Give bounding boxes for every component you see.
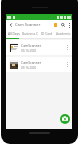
button[interactable]: CamScanner bbox=[6, 40, 72, 55]
button[interactable]: Academic bbox=[55, 30, 72, 38]
button[interactable]: All Docs bbox=[6, 30, 22, 38]
button[interactable]: Premium bbox=[51, 20, 59, 30]
button[interactable]: Scan with camera bbox=[60, 114, 70, 124]
staticText: All Docs bbox=[8, 32, 20, 36]
button[interactable]: More options bbox=[66, 20, 72, 30]
button[interactable]: ID Card bbox=[38, 30, 55, 38]
staticText: Business Card bbox=[22, 32, 38, 36]
staticText: ID Card bbox=[41, 32, 53, 36]
staticText: Academic bbox=[56, 32, 71, 36]
button[interactable]: Search bbox=[59, 20, 66, 30]
button[interactable]: Back bbox=[6, 20, 15, 30]
button[interactable]: CamScanner bbox=[6, 57, 72, 72]
staticText: CamScanner bbox=[21, 60, 42, 65]
staticText: 09-16-2020 bbox=[21, 49, 37, 53]
button[interactable]: Document options bbox=[64, 57, 71, 72]
button[interactable]: Document options bbox=[64, 40, 71, 55]
staticText: Cam Scanner bbox=[15, 22, 41, 28]
button[interactable]: Business Card bbox=[22, 30, 38, 38]
staticText: 09-16-2020 bbox=[21, 66, 37, 70]
staticText: CamScanner bbox=[21, 43, 42, 48]
